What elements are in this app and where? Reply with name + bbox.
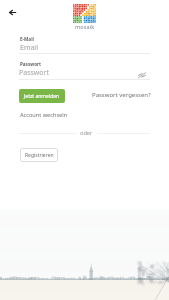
button[interactable]: Registrieren bbox=[20, 148, 58, 162]
staticText: Jetzt anmelden bbox=[24, 93, 60, 100]
staticText: Account wechseln bbox=[20, 111, 68, 119]
staticText: E-Mail bbox=[20, 36, 34, 42]
staticText: Passwort vergessen? bbox=[92, 91, 151, 99]
staticText: Registrieren bbox=[25, 152, 54, 159]
button[interactable]: Passwort vergessen? bbox=[92, 91, 151, 99]
button[interactable]: Account wechseln bbox=[20, 111, 68, 119]
button[interactable]: Jetzt anmelden bbox=[19, 89, 65, 103]
staticText: Passwort bbox=[19, 68, 50, 78]
staticText: Email bbox=[20, 43, 38, 53]
staticText: Passwort bbox=[20, 61, 42, 67]
staticText: mosaik bbox=[75, 23, 95, 30]
staticText: oder bbox=[80, 129, 93, 137]
button[interactable]: Show password bbox=[135, 68, 148, 81]
button[interactable]: Back bbox=[4, 4, 20, 20]
